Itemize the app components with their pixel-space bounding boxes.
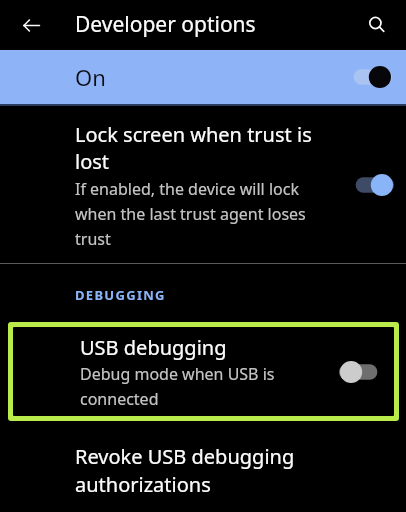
staticText: USB debugging bbox=[80, 334, 227, 361]
staticText: DEBUGGING bbox=[75, 286, 166, 304]
staticText: Lock screen when trust is lost bbox=[75, 121, 323, 175]
button[interactable]: Lock screen when trust is lost bbox=[0, 106, 406, 263]
button[interactable]: Back bbox=[14, 8, 48, 42]
staticText: On bbox=[75, 62, 106, 92]
button[interactable]: On bbox=[0, 50, 406, 104]
button[interactable]: Search bbox=[360, 8, 394, 42]
staticText: Debug mode when USB is connected bbox=[80, 363, 328, 409]
button[interactable]: Lock screen when trust is lost bbox=[346, 170, 394, 200]
button[interactable]: USB debugging bbox=[13, 327, 394, 416]
button[interactable]: USB debugging bbox=[339, 357, 387, 387]
staticText: Developer options bbox=[75, 10, 256, 39]
button[interactable]: Revoke USB debugging authorizations bbox=[0, 421, 406, 512]
staticText: Revoke USB debugging authorizations bbox=[75, 443, 325, 498]
staticText: If enabled, the device will lock when th… bbox=[75, 178, 323, 249]
button[interactable]: Developer options on bbox=[344, 62, 392, 92]
